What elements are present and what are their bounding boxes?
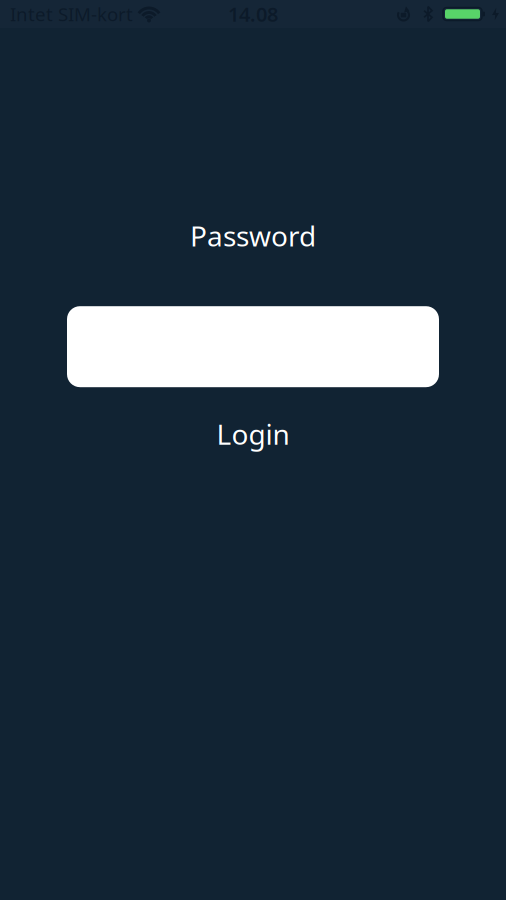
staticText: Login	[216, 415, 289, 452]
staticText: 14.08	[228, 1, 278, 27]
button[interactable]: Password	[67, 306, 439, 387]
staticText: Intet SIM-kort	[10, 2, 133, 26]
staticText: Password	[190, 217, 316, 254]
button[interactable]: Login	[216, 415, 289, 452]
